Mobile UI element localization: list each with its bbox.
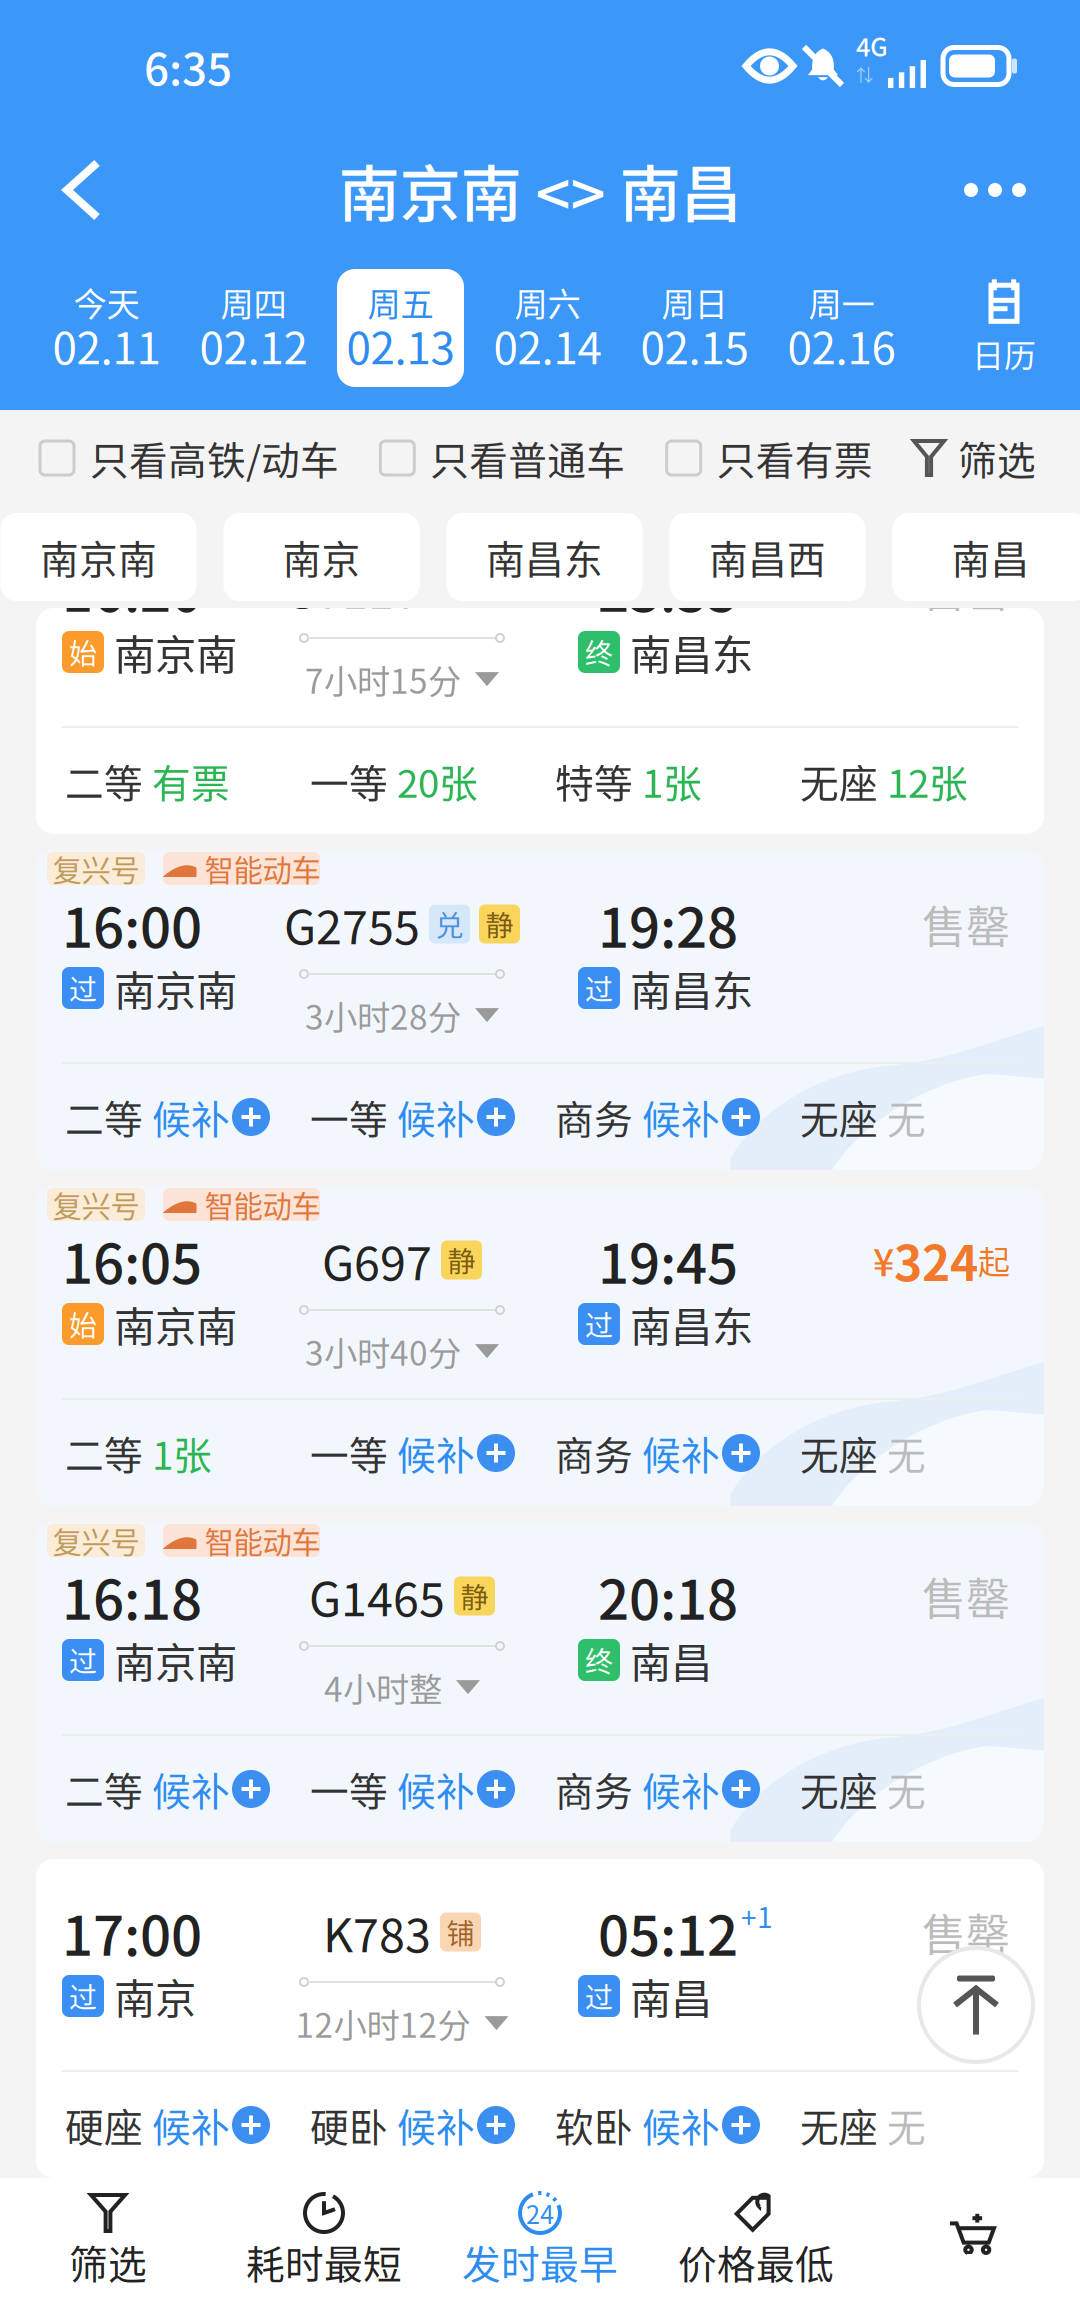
staticText: 南京 bbox=[282, 529, 360, 585]
staticText: 16:05 bbox=[62, 1220, 202, 1300]
staticText: 复兴号 bbox=[52, 1183, 139, 1226]
staticText: 候补 bbox=[642, 1425, 720, 1481]
staticText: ¥ bbox=[873, 1233, 894, 1287]
button[interactable]: 只看高铁/动车 bbox=[40, 430, 339, 486]
staticText: 周一 bbox=[808, 278, 874, 326]
staticText: 过 bbox=[69, 1976, 97, 2016]
staticText: 过 bbox=[585, 1304, 613, 1344]
button[interactable]: 周六 bbox=[474, 268, 621, 388]
button[interactable]: 今天 bbox=[33, 268, 180, 388]
staticText: 商务 bbox=[555, 1761, 633, 1817]
button[interactable]: 返回 bbox=[22, 132, 142, 248]
staticText: 一等 bbox=[310, 753, 388, 809]
button[interactable]: 周一 bbox=[768, 268, 915, 388]
staticText: 售罄 bbox=[922, 556, 1010, 620]
staticText: 无座 bbox=[800, 1425, 878, 1481]
staticText: 无 bbox=[887, 2097, 926, 2153]
staticText: 候补 bbox=[152, 2097, 230, 2153]
staticText: 一等 bbox=[310, 1761, 388, 1817]
staticText: 一等 bbox=[310, 1425, 388, 1481]
staticText: 3小时40分 bbox=[305, 1327, 461, 1375]
staticText: 南昌东 bbox=[630, 622, 753, 682]
staticText: 南京南 <> 南昌 bbox=[338, 146, 741, 234]
staticText: 南京南 bbox=[114, 958, 237, 1018]
staticText: K783 bbox=[323, 1898, 431, 1966]
button[interactable]: 复兴号 bbox=[36, 851, 1044, 1170]
staticText: 始 bbox=[69, 632, 97, 672]
button[interactable]: 南昌西 bbox=[669, 513, 865, 601]
staticText: G697 bbox=[322, 1226, 432, 1294]
button[interactable]: 24 bbox=[432, 2178, 648, 2310]
staticText: 兑 bbox=[435, 904, 463, 944]
button[interactable]: 筛选 bbox=[0, 2178, 216, 2310]
staticText: 筛选 bbox=[69, 2234, 147, 2290]
staticText: 售罄 bbox=[922, 1564, 1010, 1628]
staticText: 无座 bbox=[800, 753, 878, 809]
staticText: 南京南 bbox=[114, 1294, 237, 1354]
staticText: 1张 bbox=[642, 753, 702, 809]
staticText: 1张 bbox=[152, 1425, 212, 1481]
staticText: 324 bbox=[894, 1225, 978, 1295]
staticText: 二等 bbox=[65, 753, 143, 809]
button[interactable]: 17:00 bbox=[36, 1859, 1044, 2178]
staticText: 02.15 bbox=[640, 313, 748, 377]
staticText: 静 bbox=[447, 1240, 475, 1280]
button[interactable]: 只看有票 bbox=[667, 430, 873, 486]
staticText: 南昌东 bbox=[630, 1294, 753, 1354]
button[interactable]: 回到顶部 bbox=[917, 1946, 1035, 2064]
button[interactable]: 南昌 bbox=[892, 513, 1080, 601]
button[interactable]: 只看普通车 bbox=[380, 430, 625, 486]
staticText: 6:35 bbox=[144, 34, 232, 98]
button[interactable]: 南京南 bbox=[0, 513, 196, 601]
staticText: 无 bbox=[887, 1089, 926, 1145]
staticText: 南昌西 bbox=[709, 529, 826, 585]
staticText: 二等 bbox=[65, 1425, 143, 1481]
button[interactable]: 复兴号 bbox=[36, 1187, 1044, 1506]
staticText: 只看普通车 bbox=[430, 430, 625, 486]
staticText: 复兴号 bbox=[52, 511, 139, 554]
button[interactable]: 价格最低 bbox=[648, 2178, 864, 2310]
staticText: 3小时28分 bbox=[305, 991, 461, 1039]
staticText: 23:35 bbox=[598, 548, 738, 628]
staticText: 候补 bbox=[152, 1089, 230, 1145]
staticText: 无座 bbox=[800, 2097, 878, 2153]
staticText: 周六 bbox=[514, 278, 580, 326]
staticText: 16:20 bbox=[62, 548, 202, 628]
staticText: 南昌东 bbox=[486, 529, 603, 585]
staticText: 无座 bbox=[800, 1761, 878, 1817]
button[interactable]: 复兴号 bbox=[36, 1523, 1044, 1842]
button[interactable]: 南京 bbox=[223, 513, 419, 601]
staticText: 02.11 bbox=[52, 313, 160, 377]
button[interactable]: 周五 bbox=[327, 268, 474, 388]
staticText: 二等 bbox=[65, 1089, 143, 1145]
button[interactable]: 周四 bbox=[180, 268, 327, 388]
staticText: 一等 bbox=[310, 1089, 388, 1145]
staticText: 硬座 bbox=[65, 2097, 143, 2153]
staticText: 南昌 bbox=[630, 1630, 712, 1690]
button[interactable]: 购物车 bbox=[864, 2178, 1080, 2310]
staticText: 周日 bbox=[661, 278, 727, 326]
staticText: 过 bbox=[585, 1976, 613, 2016]
staticText: 候补 bbox=[642, 2097, 720, 2153]
button[interactable]: 周日 bbox=[621, 268, 768, 388]
staticText: 周四 bbox=[220, 278, 286, 326]
staticText: 有票 bbox=[152, 753, 230, 809]
button[interactable]: 耗时最短 bbox=[216, 2178, 432, 2310]
staticText: 过 bbox=[585, 968, 613, 1008]
staticText: 12张 bbox=[887, 753, 968, 809]
staticText: 终 bbox=[585, 632, 613, 672]
button[interactable]: 日历 bbox=[944, 268, 1064, 388]
staticText: 南昌 bbox=[951, 529, 1029, 585]
staticText: 02.12 bbox=[199, 313, 307, 377]
staticText: 7小时15分 bbox=[305, 655, 461, 703]
staticText: 静 bbox=[485, 904, 513, 944]
button[interactable]: 筛选 bbox=[914, 430, 1036, 486]
staticText: 软卧 bbox=[555, 2097, 633, 2153]
button[interactable]: 更多 bbox=[940, 132, 1026, 248]
button[interactable]: 南昌东 bbox=[446, 513, 642, 601]
staticText: 售罄 bbox=[922, 892, 1010, 956]
staticText: 起 bbox=[978, 1237, 1010, 1283]
staticText: 始 bbox=[69, 1304, 97, 1344]
staticText: 12小时12分 bbox=[295, 1999, 470, 2047]
staticText: 价格最低 bbox=[678, 2234, 834, 2290]
